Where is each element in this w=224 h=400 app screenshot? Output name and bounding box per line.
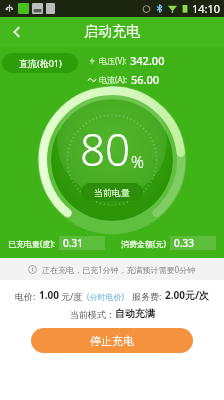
staticText: 元/度 bbox=[61, 290, 83, 302]
button[interactable]: Back bbox=[0, 17, 34, 47]
staticText: 电压(V): bbox=[99, 55, 127, 66]
staticText: 电价: bbox=[15, 290, 36, 302]
staticText: 正在充电，已充1分钟，充满预计需要0分钟 bbox=[42, 264, 196, 275]
staticText: 自动充满 bbox=[115, 307, 155, 320]
button[interactable]: 停止充电 bbox=[31, 328, 193, 353]
staticText: (分时电价) bbox=[87, 291, 124, 302]
staticText: 启动充电 bbox=[84, 23, 140, 41]
staticText: 14:10 bbox=[192, 1, 221, 16]
staticText: 当前模式： bbox=[70, 309, 115, 320]
staticText: 80 bbox=[80, 119, 131, 179]
button[interactable]: 直流(枪01) bbox=[2, 53, 78, 73]
staticText: 电流(A): bbox=[99, 74, 128, 85]
staticText: 2.00元/次 bbox=[165, 288, 210, 302]
staticText: 56.00 bbox=[131, 72, 160, 87]
staticText: 服务费: bbox=[132, 290, 162, 302]
staticText: 342.00 bbox=[130, 53, 165, 68]
staticText: 已充电量(度): bbox=[8, 238, 55, 249]
staticText: 消费金额(元) bbox=[121, 238, 166, 249]
staticText: 当前电量 bbox=[94, 187, 130, 198]
staticText: 0.33 bbox=[174, 236, 194, 250]
staticText: 1.00 bbox=[39, 288, 59, 302]
staticText: % bbox=[131, 151, 144, 173]
staticText: 停止充电 bbox=[90, 334, 134, 348]
button[interactable]: (分时电价) bbox=[87, 291, 124, 302]
staticText: 0.31 bbox=[63, 236, 83, 250]
staticText: 直流(枪01) bbox=[19, 57, 62, 69]
